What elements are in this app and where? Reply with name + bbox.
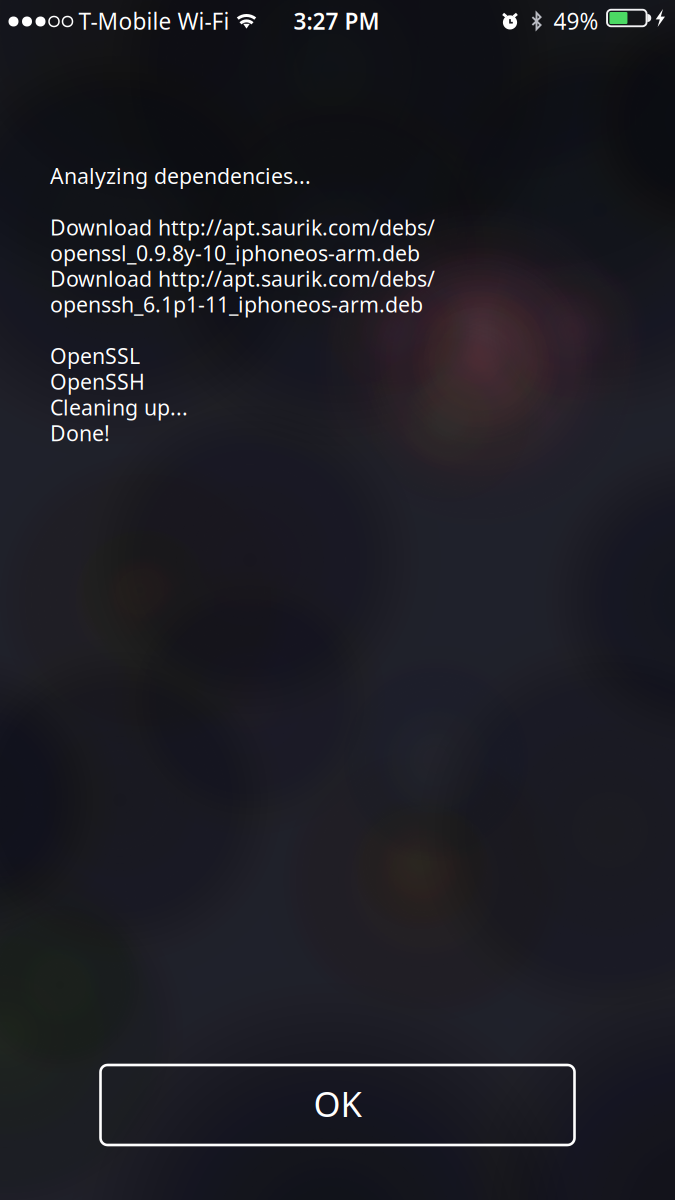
button[interactable]: OK xyxy=(100,1065,574,1145)
staticText: Analyzing dependencies... xyxy=(50,161,311,190)
staticText: Done! xyxy=(50,419,110,447)
staticText: Download http://apt.saurik.com/debs/ xyxy=(50,213,435,241)
staticText: Download http://apt.saurik.com/debs/ xyxy=(50,264,435,293)
staticText: Cleaning up... xyxy=(50,393,188,421)
staticText: openssh_6.1p1-11_iphoneos-arm.deb xyxy=(50,290,423,318)
staticText: OpenSSH xyxy=(50,367,145,396)
staticText: OpenSSL xyxy=(50,342,140,370)
staticText: openssl_0.9.8y-10_iphoneos-arm.deb xyxy=(50,239,420,267)
staticText: 49% xyxy=(553,6,598,36)
staticText: OK xyxy=(313,1080,361,1126)
staticText: 3:27 PM xyxy=(293,6,379,36)
staticText: T-Mobile Wi-Fi xyxy=(78,6,229,36)
